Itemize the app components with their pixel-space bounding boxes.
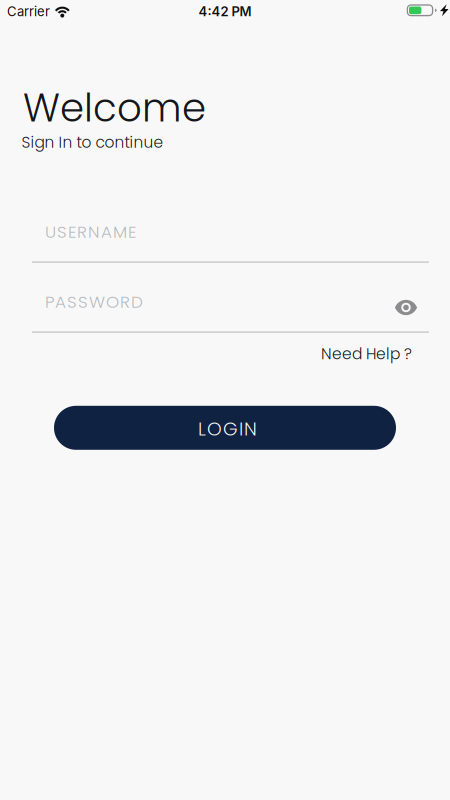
staticText: Need Help ? — [321, 343, 412, 365]
staticText: Welcome — [23, 81, 206, 135]
button[interactable]: Password — [32, 285, 429, 333]
button[interactable]: Show password — [384, 287, 428, 327]
button[interactable]: Username — [32, 215, 429, 263]
staticText: Sign In to continue — [21, 131, 163, 153]
staticText: Carrier — [7, 3, 50, 19]
staticText: P A S S W O R D — [45, 290, 143, 313]
staticText: U S E R N A M E — [45, 220, 136, 243]
staticText: L O G I N — [198, 416, 257, 442]
button[interactable]: Need Help ? — [315, 340, 418, 368]
staticText: 4:42 PM — [198, 3, 251, 19]
button[interactable]: Login — [54, 406, 396, 450]
